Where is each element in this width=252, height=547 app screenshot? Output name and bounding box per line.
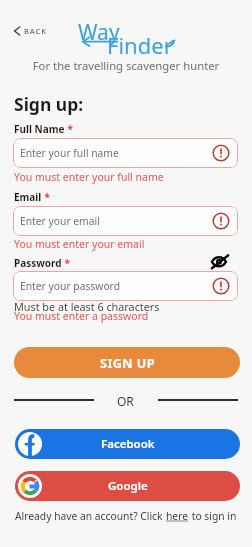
staticText: Password [14,256,62,270]
staticText: Finder [107,30,173,60]
staticText: You must enter your email [14,237,145,251]
staticText: to sign in [189,509,237,523]
staticText: You must enter a password [14,309,149,323]
staticText: Full Name [14,122,65,136]
button[interactable]: Enter your email [13,206,238,236]
staticText: * [62,256,71,270]
staticText: * [65,122,74,136]
button[interactable]: Google [15,471,240,501]
staticText: Already have an account? Click [15,509,166,523]
button[interactable]: Enter your full name [13,138,238,168]
staticText: Enter your email [20,214,100,228]
staticText: Sign up: [14,92,84,116]
button[interactable]: Toggle password visibility [208,253,231,270]
button[interactable]: Back [13,24,48,38]
staticText: BACK [24,26,47,36]
staticText: Enter your password [20,279,120,293]
button[interactable]: here [166,509,189,523]
staticText: Google [108,478,148,494]
staticText: * [42,190,51,204]
staticText: Email [14,190,42,204]
staticText: You must enter your full name [14,170,164,184]
button[interactable]: Enter your password [13,271,238,301]
staticText: Facebook [101,436,155,452]
staticText: OR [117,393,134,409]
button[interactable]: Facebook [15,429,240,459]
staticText: Enter your full name [20,146,119,160]
staticText: Must be at least 6 characters [14,299,160,314]
button[interactable]: SIGN UP [14,347,240,378]
staticText: Way [78,18,120,47]
staticText: For the travelling scavenger hunter [0,58,252,73]
staticText: SIGN UP [100,354,155,371]
